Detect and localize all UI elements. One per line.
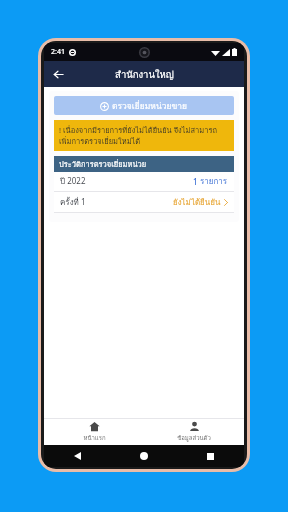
staticText: ตรวจเยี่ยมหน่วยขาย	[112, 99, 188, 113]
staticText: 2:41	[51, 47, 65, 57]
button[interactable]: Back	[48, 64, 68, 84]
button[interactable]: Home	[110, 445, 177, 467]
button[interactable]: หน้าแรก	[44, 419, 144, 445]
button[interactable]: ตรวจเยี่ยมหน่วยขาย	[54, 96, 234, 115]
staticText: สำนักงานใหญ่	[115, 67, 174, 82]
staticText: ปี 2022	[60, 175, 86, 188]
staticText: ! เนื่องจากมีรายการที่ยังไม่ได้ยืนยัน จึ…	[59, 124, 229, 147]
staticText: ยังไม่ได้ยืนยัน	[173, 196, 221, 209]
button[interactable]: Recent apps	[177, 445, 244, 467]
button[interactable]: Back	[44, 445, 110, 467]
staticText: ข้อมูลส่วนตัว	[177, 433, 211, 443]
staticText: ประวัติการตรวจเยี่ยมหน่วย	[59, 158, 147, 170]
button[interactable]: ครั้งที่ 1	[54, 192, 234, 212]
staticText: ครั้งที่ 1	[60, 196, 86, 209]
staticText: 1	[193, 176, 200, 187]
button[interactable]: ข้อมูลส่วนตัว	[144, 419, 244, 445]
button[interactable]: ปี 2022	[54, 172, 234, 191]
staticText: รายการ	[200, 175, 228, 188]
staticText: หน้าแรก	[83, 433, 106, 443]
